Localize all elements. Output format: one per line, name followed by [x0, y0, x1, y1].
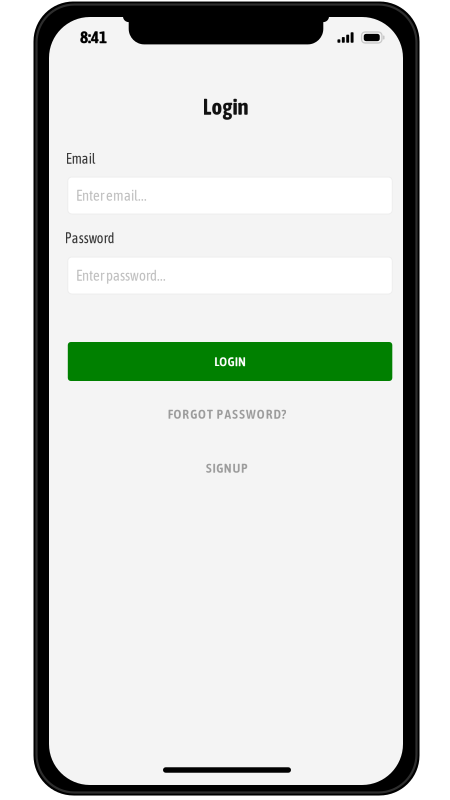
staticText: A — [224, 406, 231, 422]
staticText: S — [232, 406, 238, 422]
staticText: Email — [66, 151, 96, 167]
staticText: Password — [65, 230, 115, 246]
staticText: F — [168, 406, 173, 422]
staticText: S — [206, 460, 212, 476]
button[interactable]: F — [122, 402, 332, 426]
button[interactable]: Enter password... — [68, 257, 392, 294]
staticText: P — [241, 460, 248, 476]
staticText: I — [213, 460, 216, 476]
staticText: ? — [281, 406, 286, 422]
staticText: P — [217, 406, 224, 422]
button[interactable]: L — [68, 342, 392, 381]
staticText: S — [239, 406, 245, 422]
staticText: D — [273, 406, 280, 422]
staticText: O — [219, 354, 227, 369]
staticText: I — [235, 354, 238, 369]
staticText: 8:41 — [80, 27, 107, 47]
staticText: R — [266, 406, 273, 422]
staticText: T — [207, 406, 213, 422]
staticText: O — [257, 406, 265, 422]
staticText: N — [238, 354, 246, 369]
staticText: Login — [202, 93, 248, 119]
staticText: O — [173, 406, 181, 422]
staticText: U — [232, 460, 240, 476]
staticText: G — [190, 406, 197, 422]
staticText: G — [216, 460, 223, 476]
staticText: G — [228, 354, 235, 369]
button[interactable]: Enter email... — [68, 177, 392, 214]
staticText: Enter email... — [76, 187, 147, 204]
staticText: R — [182, 406, 189, 422]
staticText: Enter password... — [76, 267, 166, 284]
staticText: L — [214, 354, 219, 369]
staticText: O — [198, 406, 206, 422]
staticText: N — [224, 460, 232, 476]
button[interactable]: S — [162, 456, 292, 480]
staticText: W — [246, 406, 256, 422]
